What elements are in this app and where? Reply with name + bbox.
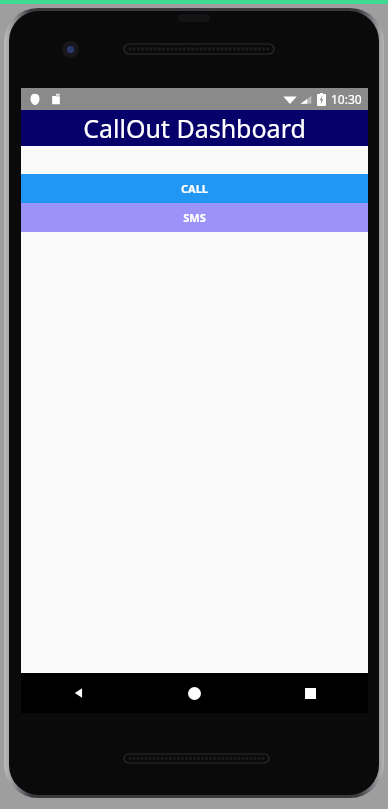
staticText: SMS <box>183 210 206 225</box>
staticText: CALL <box>181 181 208 196</box>
button[interactable]: Back <box>21 673 136 713</box>
staticText: CallOut Dashboard <box>83 111 306 145</box>
button[interactable]: Recent apps <box>252 673 368 713</box>
button[interactable]: CALL <box>21 174 368 203</box>
button[interactable]: SMS <box>21 203 368 232</box>
staticText: 10:30 <box>331 91 362 107</box>
button[interactable]: Home <box>136 673 252 713</box>
